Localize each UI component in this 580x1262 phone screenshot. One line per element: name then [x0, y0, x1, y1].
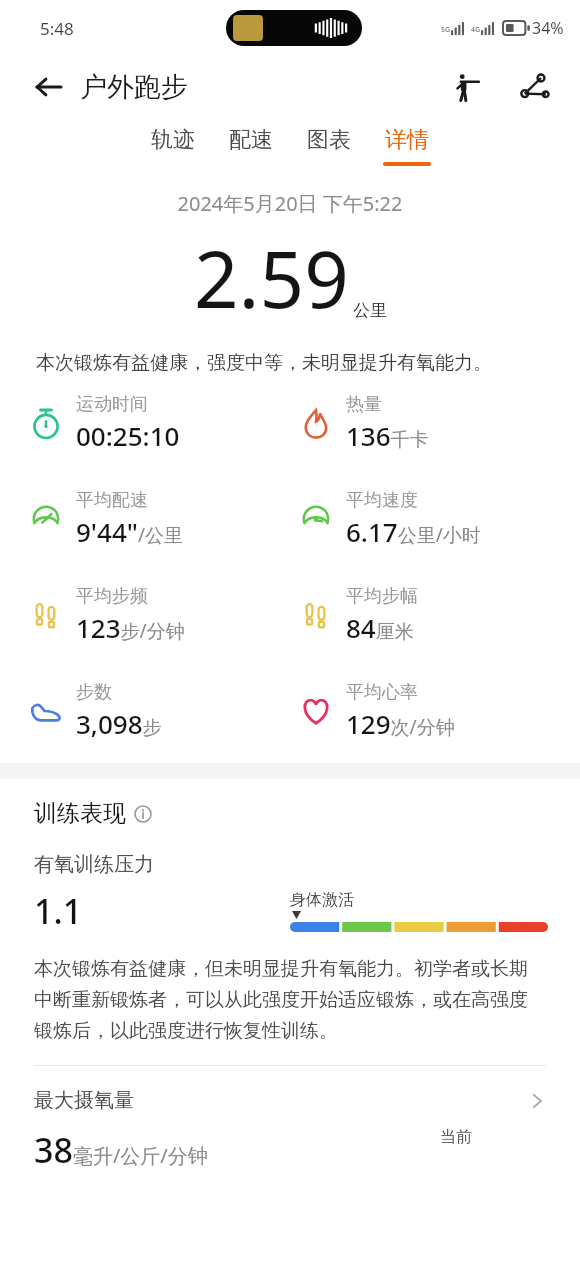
staticText: 平均步频	[76, 585, 148, 608]
staticText: 平均步幅	[346, 585, 418, 608]
staticText: 公里	[353, 300, 387, 321]
staticText: 34%	[532, 17, 564, 39]
staticText: 运动时间	[76, 393, 148, 416]
staticText: 5:48	[40, 17, 74, 40]
button[interactable]: 平均配速	[26, 489, 290, 549]
button[interactable]: 步数	[26, 681, 290, 741]
staticText: 详情	[385, 126, 429, 154]
staticText: 热量	[346, 393, 382, 416]
button[interactable]: Workout type	[444, 64, 490, 110]
button[interactable]: 详情	[381, 124, 433, 168]
staticText: 136千卡	[346, 418, 429, 453]
button[interactable]: 运动时间	[26, 393, 290, 453]
staticText: 6.17公里/小时	[346, 514, 481, 549]
staticText: 本次锻炼有益健康，强度中等，未明显提升有氧能力。	[36, 351, 544, 375]
staticText: 有氧训练压力	[34, 852, 154, 877]
button[interactable]: 配速	[225, 124, 277, 168]
other: More	[528, 1092, 546, 1110]
staticText: 1.1	[34, 888, 83, 934]
button[interactable]: 轨迹	[147, 124, 199, 168]
staticText: 4G	[471, 25, 481, 35]
staticText: 129次/分钟	[346, 706, 455, 741]
button[interactable]: 平均心率	[296, 681, 580, 741]
staticText: 平均速度	[346, 489, 418, 512]
staticText: 当前	[440, 1127, 472, 1147]
staticText: 84厘米	[346, 610, 414, 645]
staticText: 配速	[229, 126, 273, 154]
button[interactable]: Back	[26, 65, 70, 109]
staticText: 3,098步	[76, 706, 162, 741]
staticText: 本次锻炼有益健康，但未明显提升有氧能力。初学者或长期中断重新锻炼者，可以从此强度…	[34, 957, 546, 1043]
staticText: 身体激活	[290, 890, 354, 910]
staticText: 轨迹	[151, 126, 195, 154]
staticText: 00:25:10	[76, 418, 180, 453]
button[interactable]: 平均步频	[26, 585, 290, 645]
other: Info	[134, 805, 152, 823]
button[interactable]: 图表	[303, 124, 355, 168]
staticText: 图表	[307, 126, 351, 154]
button[interactable]: 最大摄氧量	[0, 1088, 580, 1173]
staticText: 38毫升/公斤/分钟	[34, 1127, 208, 1173]
staticText: 2.59	[194, 225, 349, 331]
staticText: 9'44"/公里	[76, 514, 184, 549]
staticText: 步数	[76, 681, 112, 704]
staticText: 5G	[441, 25, 451, 35]
button[interactable]: 平均速度	[296, 489, 580, 549]
staticText: 平均心率	[346, 681, 418, 704]
staticText: 2024年5月20日 下午5:22	[0, 190, 580, 217]
button[interactable]: 热量	[296, 393, 580, 453]
staticText: 平均配速	[76, 489, 148, 512]
button[interactable]: 训练表现	[34, 799, 152, 828]
staticText: 最大摄氧量	[34, 1088, 134, 1113]
button[interactable]: 平均步幅	[296, 585, 580, 645]
staticText: 训练表现	[34, 799, 126, 828]
staticText: 户外跑步	[80, 70, 188, 104]
button[interactable]: Share	[512, 64, 558, 110]
staticText: 123步/分钟	[76, 610, 185, 645]
